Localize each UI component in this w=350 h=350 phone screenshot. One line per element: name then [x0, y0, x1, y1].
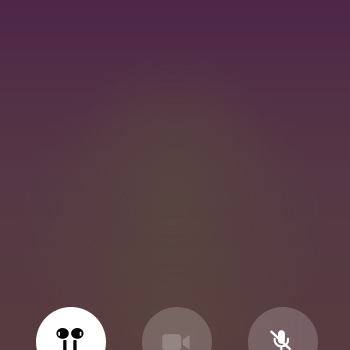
button[interactable]: Mute	[248, 307, 318, 350]
button[interactable]: Camera	[142, 307, 212, 350]
button[interactable]: Audio output	[36, 307, 106, 350]
